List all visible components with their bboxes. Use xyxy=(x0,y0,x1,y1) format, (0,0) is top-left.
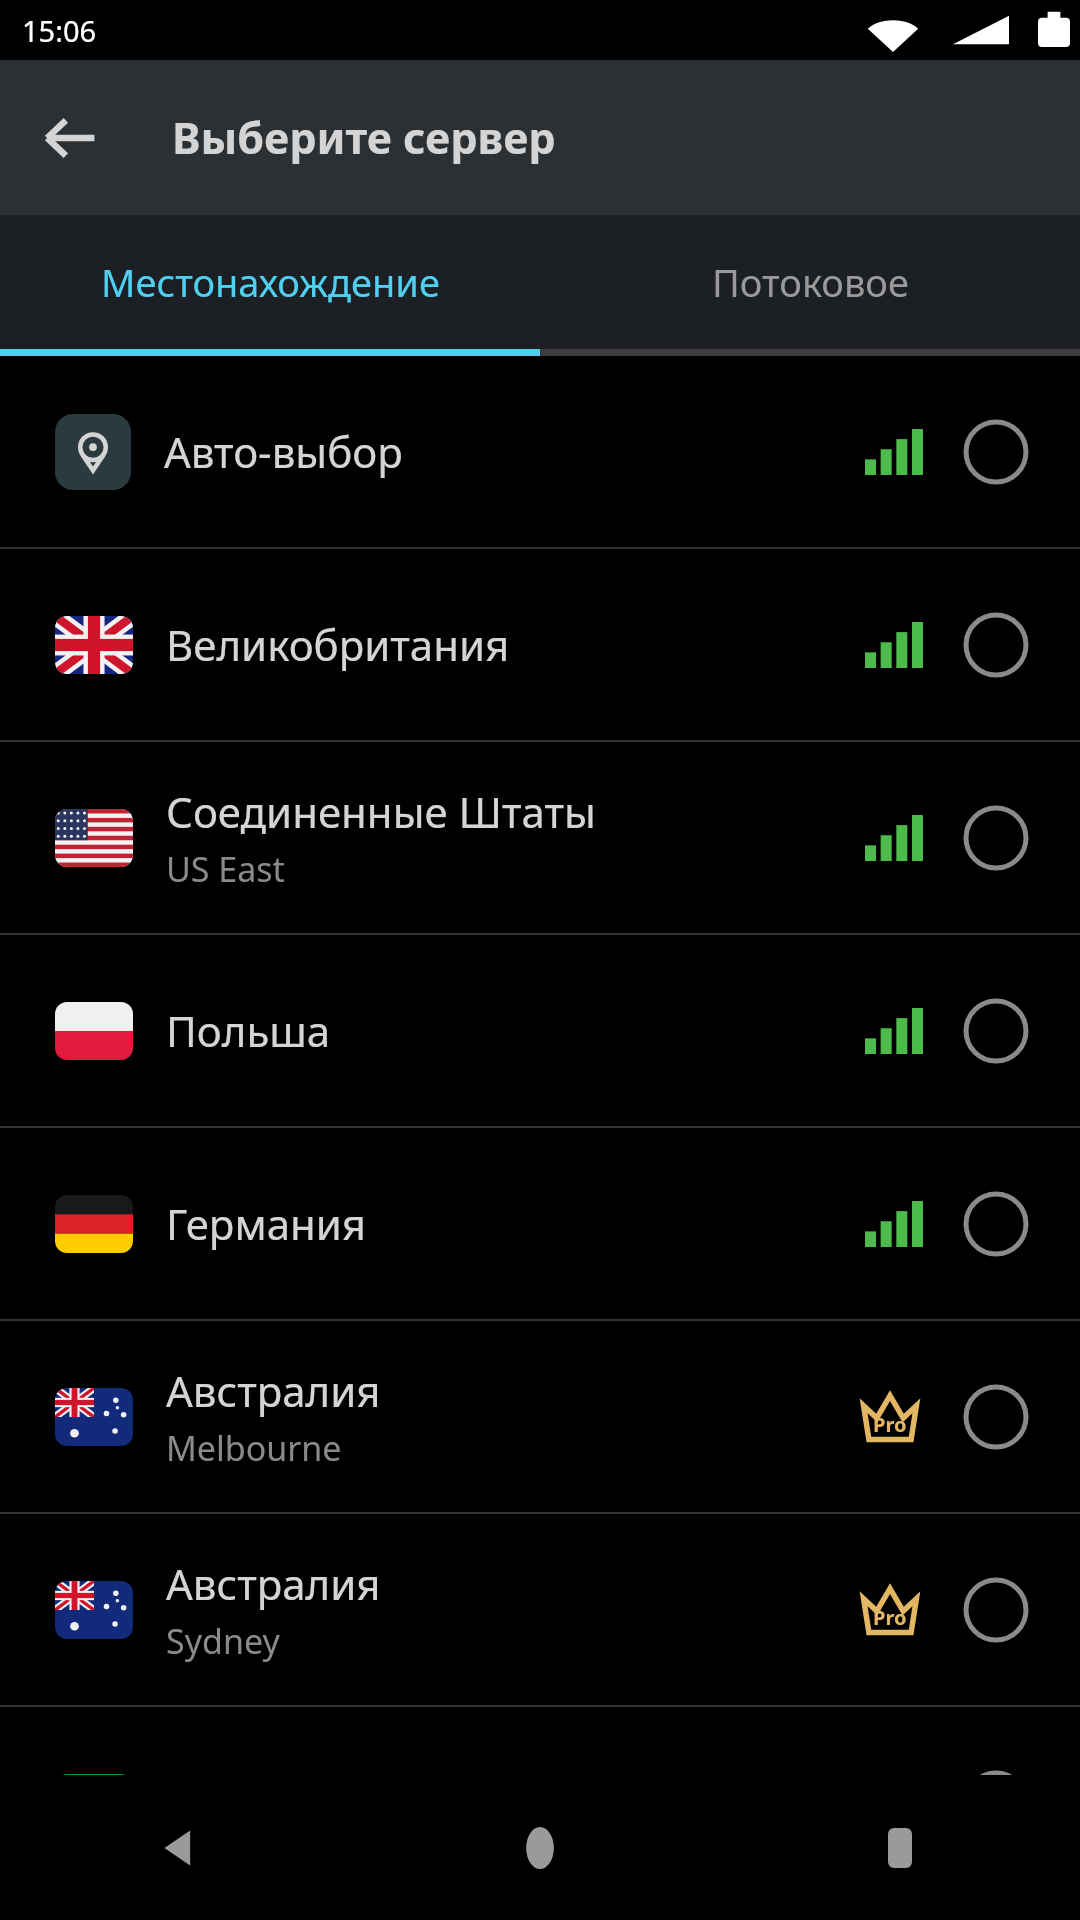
button[interactable]: Соединенные Штаты xyxy=(0,742,1080,933)
staticText: Melbourne xyxy=(166,1425,342,1471)
staticText: Sydney xyxy=(166,1618,280,1664)
staticText: Великобритания xyxy=(166,616,510,673)
button[interactable]: Австралия xyxy=(0,1514,1080,1705)
staticText: Австралия xyxy=(166,1362,381,1419)
button[interactable]: Back xyxy=(0,1775,360,1920)
button[interactable]: Home xyxy=(360,1775,720,1920)
button[interactable]: Recents xyxy=(720,1775,1080,1920)
staticText: Местонахождение xyxy=(101,256,440,308)
staticText: Pro xyxy=(873,1604,907,1631)
button[interactable]: Потоковое xyxy=(540,215,1080,349)
staticText: Польша xyxy=(166,1002,331,1059)
button[interactable]: Германия xyxy=(0,1128,1080,1319)
button[interactable]: Бразилия xyxy=(0,1707,1080,1898)
button[interactable]: Back xyxy=(22,90,118,186)
button[interactable]: Великобритания xyxy=(0,549,1080,740)
staticText: Германия xyxy=(166,1195,367,1252)
button[interactable]: Польша xyxy=(0,935,1080,1126)
staticText: Выберите сервер xyxy=(172,108,556,167)
button[interactable]: Местонахождение xyxy=(0,215,540,349)
staticText: Авто-выбор xyxy=(164,423,403,480)
staticText: 15:06 xyxy=(22,11,97,50)
staticText: Австралия xyxy=(166,1555,381,1612)
staticText: US East xyxy=(166,846,285,892)
staticText: Потоковое xyxy=(712,256,909,308)
staticText: Соединенные Штаты xyxy=(166,783,596,840)
staticText: Pro xyxy=(873,1411,907,1438)
button[interactable]: Авто-выбор xyxy=(0,356,1080,547)
button[interactable]: Австралия xyxy=(0,1321,1080,1512)
